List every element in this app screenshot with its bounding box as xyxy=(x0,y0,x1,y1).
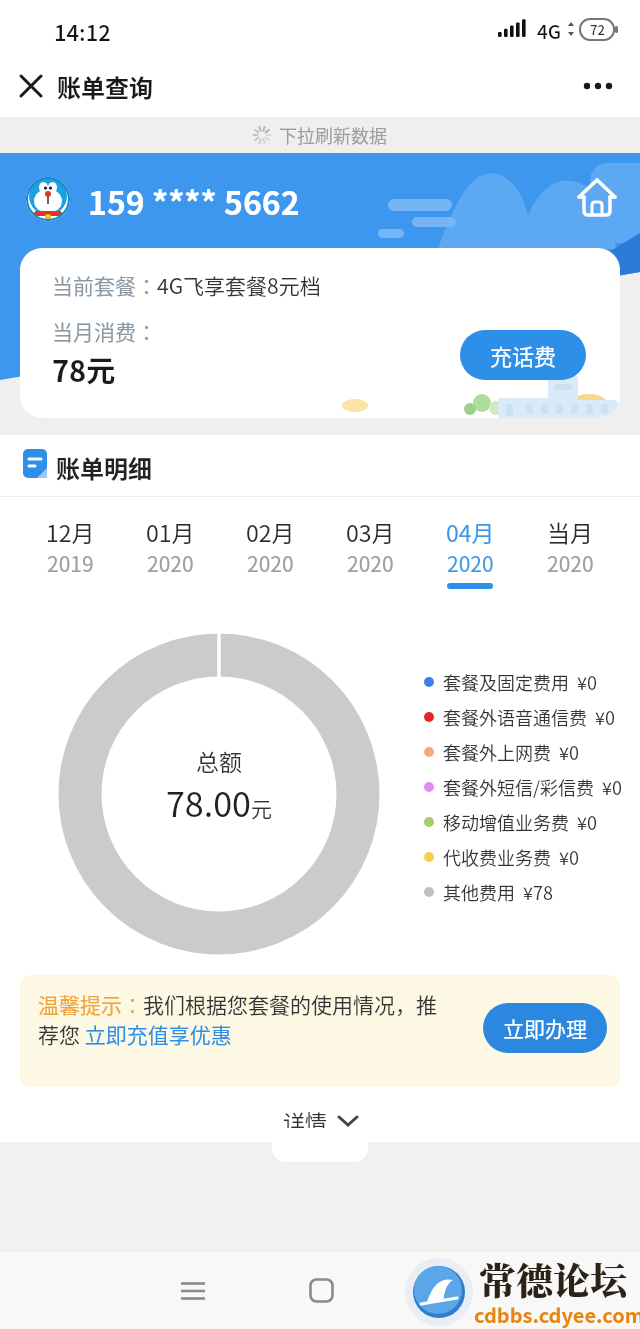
staticText: 72 xyxy=(590,20,605,39)
staticText: 14:12 xyxy=(54,15,111,47)
staticText: 详情 xyxy=(283,1105,328,1137)
staticText: 元 xyxy=(251,793,272,823)
staticText: 78元 xyxy=(52,348,116,390)
staticText: 账单查询 xyxy=(57,69,153,104)
staticText: 当月消费： xyxy=(52,316,157,346)
staticText: cdbbs.cdyee.com xyxy=(474,1300,640,1329)
staticText: 当月 xyxy=(547,515,593,548)
staticText: 当前套餐： xyxy=(52,270,157,300)
staticText: 2019 xyxy=(47,548,94,578)
staticText: 2020 xyxy=(247,548,294,578)
staticText: 温馨提示：我们根据您套餐的使用情况，推 xyxy=(38,989,437,1019)
staticText: 充话费 xyxy=(490,339,557,371)
staticText: 总额 xyxy=(196,744,242,777)
staticText: 78.00 xyxy=(166,778,251,827)
staticText: 2020 xyxy=(447,548,494,578)
staticText: 移动增值业务费 ¥0 xyxy=(443,809,598,835)
staticText: 其他费用 ¥78 xyxy=(443,879,554,905)
staticText: 02月 xyxy=(246,515,295,548)
staticText: 套餐及固定费用 ¥0 xyxy=(443,669,598,695)
staticText: 荐您 立即充值享优惠 xyxy=(38,1019,232,1049)
staticText: 4G飞享套餐8元档 xyxy=(157,270,321,300)
staticText: 2020 xyxy=(347,548,394,578)
staticText: 159 **** 5662 xyxy=(88,178,300,224)
staticText: 套餐外语音通信费 ¥0 xyxy=(443,704,616,730)
staticText: 01月 xyxy=(146,515,195,548)
staticText: 套餐外短信/彩信费 ¥0 xyxy=(443,774,623,800)
staticText: 账单明细 xyxy=(56,450,152,485)
staticText: 立即办理 xyxy=(503,1013,587,1043)
staticText: 2020 xyxy=(147,548,194,578)
staticText: 04月 xyxy=(446,515,495,548)
staticText: 代收费业务费 ¥0 xyxy=(443,844,580,870)
staticText: 12月 xyxy=(46,515,95,548)
staticText: 03月 xyxy=(346,515,395,548)
staticText: 套餐外上网费 ¥0 xyxy=(443,739,580,765)
staticText: 4G xyxy=(537,17,562,45)
staticText: 常德论坛 xyxy=(479,1252,627,1305)
staticText: 下拉刷新数据 xyxy=(279,122,387,148)
staticText: 2020 xyxy=(547,548,594,578)
